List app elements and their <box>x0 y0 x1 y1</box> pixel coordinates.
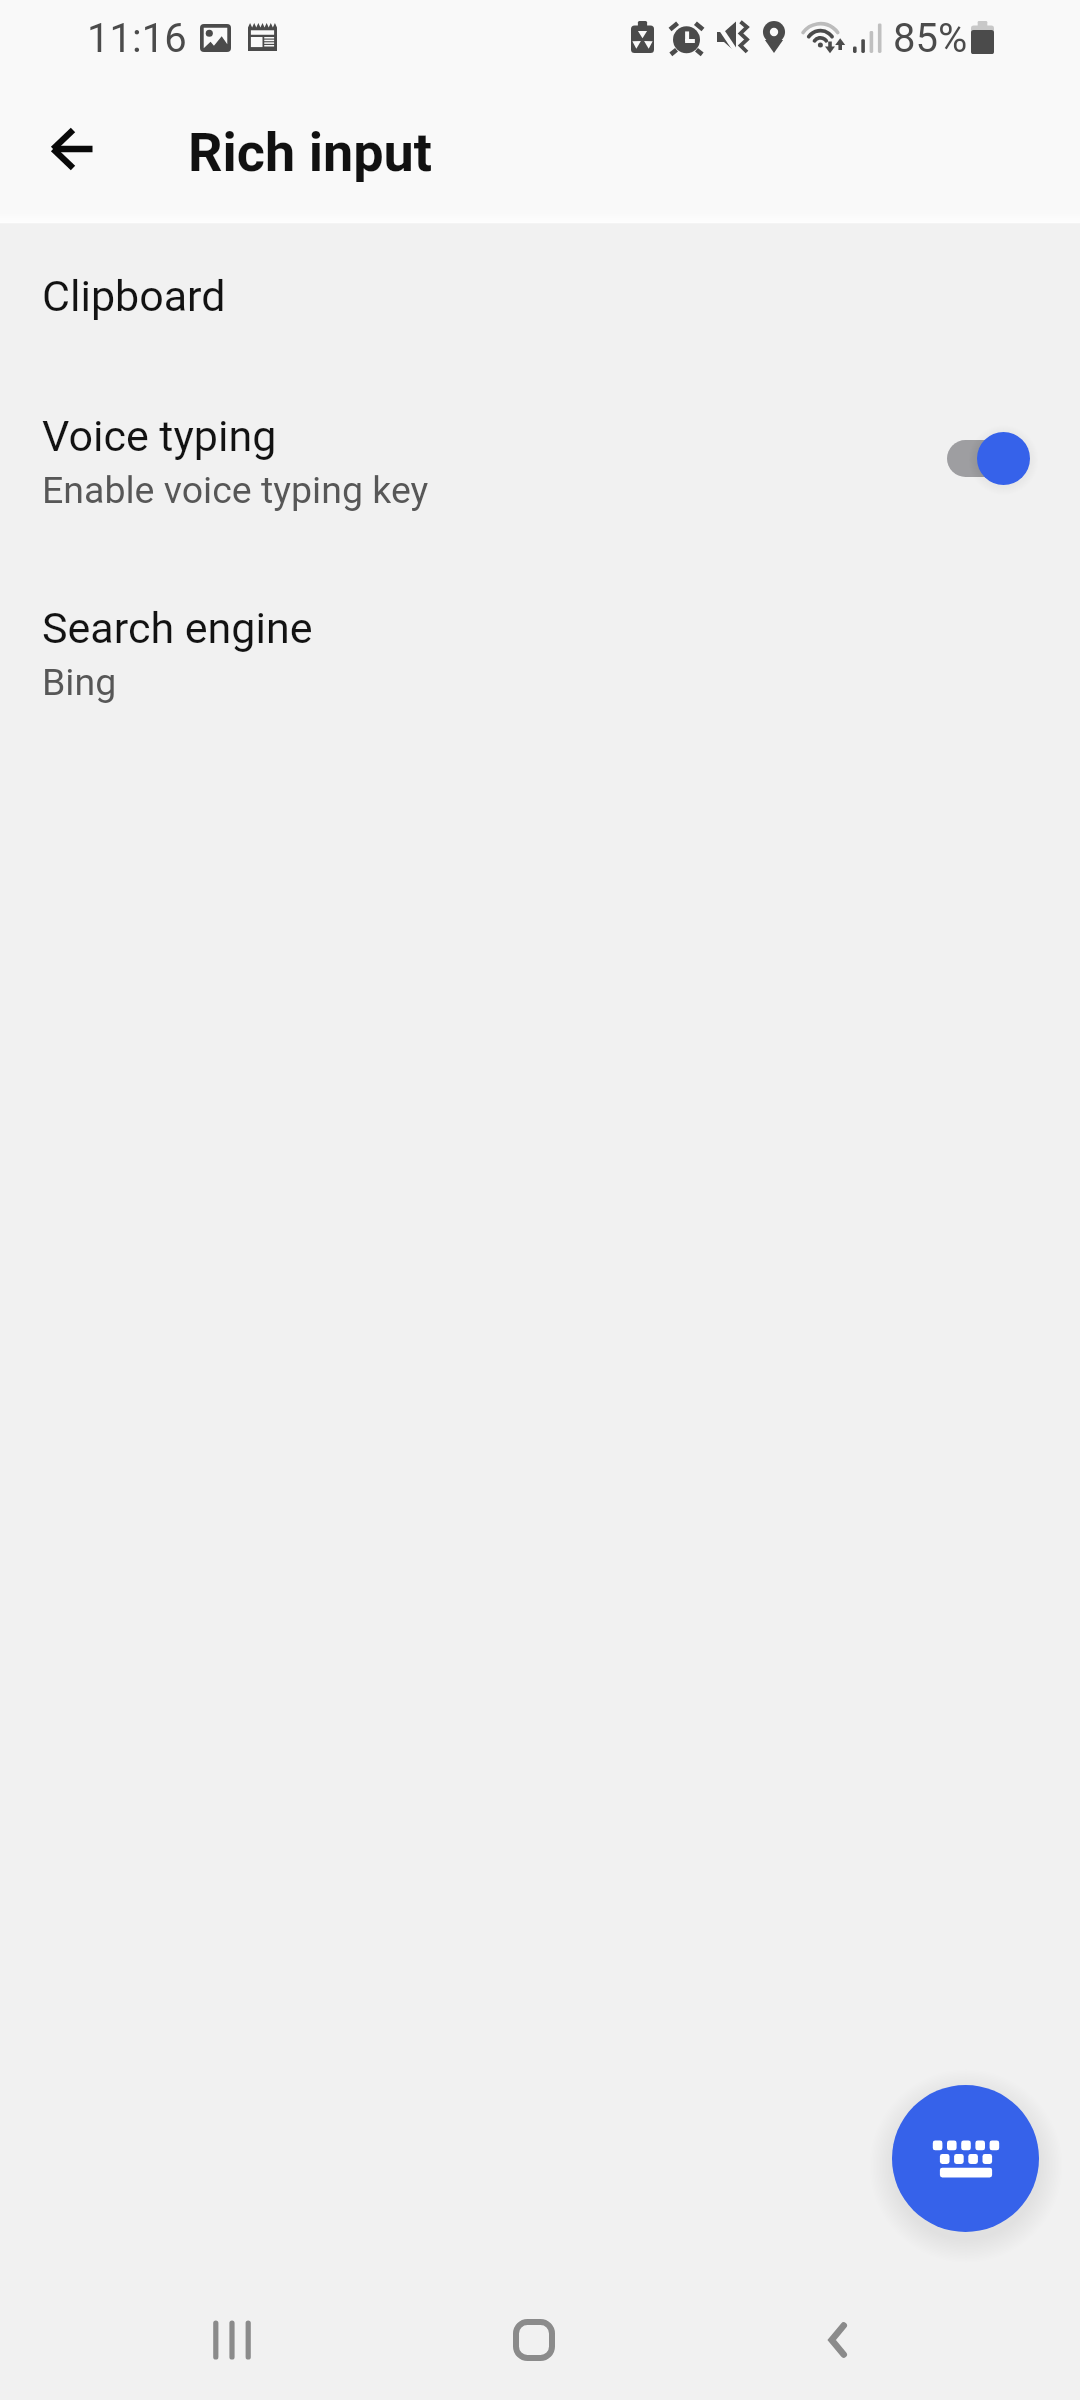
button[interactable]: Search engine <box>0 557 1080 750</box>
staticText: Search engine <box>42 603 313 653</box>
button[interactable]: Show keyboard <box>892 2085 1039 2232</box>
staticText: 11:16 <box>87 15 187 62</box>
staticText: Rich input <box>188 121 433 184</box>
button[interactable]: Navigate up <box>17 95 127 205</box>
staticText: 85% <box>893 15 968 62</box>
staticText: Clipboard <box>42 271 226 321</box>
staticText: Enable voice typing key <box>42 468 429 512</box>
button[interactable]: Clipboard <box>0 224 1080 368</box>
button[interactable]: Voice typing <box>0 366 1080 557</box>
button[interactable]: Recents <box>172 2280 292 2400</box>
button[interactable]: Back <box>775 2280 895 2400</box>
staticText: Voice typing <box>42 411 277 461</box>
staticText: Bing <box>42 660 117 704</box>
button[interactable]: Home <box>474 2280 594 2400</box>
